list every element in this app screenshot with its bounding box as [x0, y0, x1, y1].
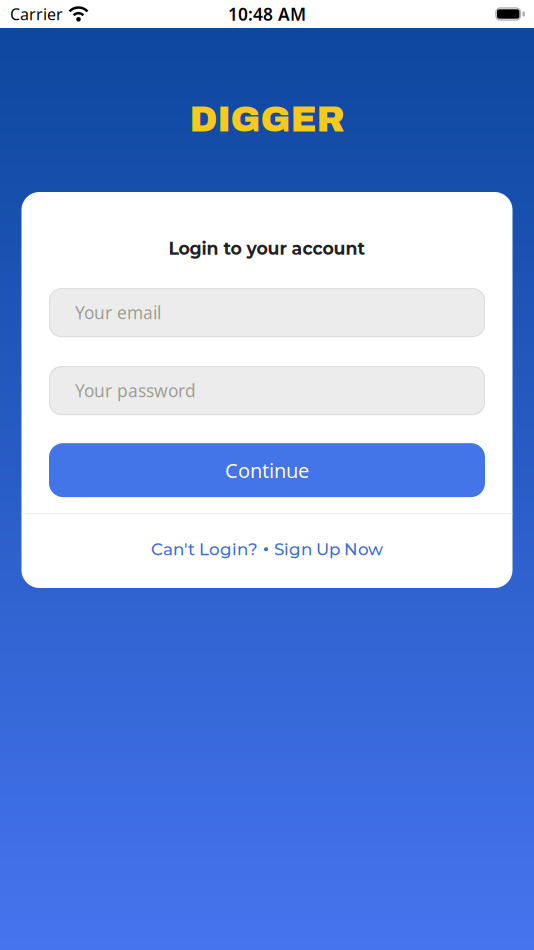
staticText: Can't Login? — [151, 539, 258, 559]
button[interactable]: Sign Up Now — [274, 539, 383, 559]
staticText: Sign Up Now — [274, 539, 383, 559]
staticText: Login to your account — [168, 238, 365, 259]
staticText: Continue — [225, 457, 309, 483]
staticText: 10:48 AM — [228, 2, 306, 25]
button[interactable]: Continue — [49, 443, 485, 497]
button[interactable]: Can't Login? — [151, 539, 258, 559]
staticText: Carrier — [10, 3, 63, 25]
staticText: DIGGER — [189, 100, 344, 139]
staticText: Your email — [75, 301, 161, 324]
textField[interactable]: Your email — [75, 301, 267, 324]
textField[interactable]: Your password — [75, 379, 267, 402]
staticText: Your password — [75, 379, 196, 402]
